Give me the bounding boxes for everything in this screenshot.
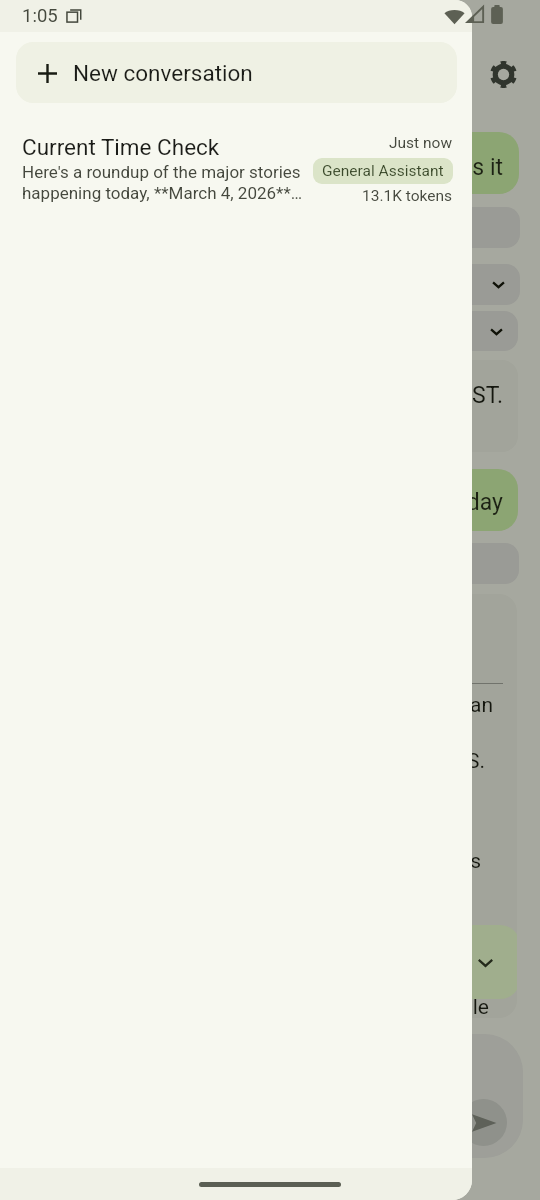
button[interactable]: [16, 264, 520, 305]
button[interactable]: [56, 925, 517, 999]
staticText: Here is a roundup of the big stories fro…: [21, 693, 493, 718]
button[interactable]: New conversation: [16, 42, 457, 103]
staticText: Here's a roundup of the major stories ha…: [22, 162, 304, 203]
staticText: More details for each of these items: [144, 849, 481, 874]
staticText: Read the full article: [309, 995, 489, 1020]
staticText: today, March 4, 2026. Top stories across…: [37, 749, 485, 774]
staticText: New conversation: [73, 60, 253, 86]
button[interactable]: Current Time Check: [0, 134, 472, 205]
staticText: General Assistant: [322, 162, 444, 180]
staticText: Just now: [389, 134, 453, 152]
staticText: what's the news today: [277, 489, 503, 516]
staticText: The current time is 1:05 AM EST.: [171, 382, 503, 409]
staticText: Current Time Check: [22, 134, 220, 160]
staticText: 13.1K tokens: [362, 187, 453, 205]
button[interactable]: Send: [460, 1099, 507, 1146]
button[interactable]: Settings: [481, 52, 525, 96]
staticText: what time is it: [359, 154, 503, 181]
button[interactable]: [16, 311, 518, 351]
staticText: 1:05: [22, 5, 58, 27]
